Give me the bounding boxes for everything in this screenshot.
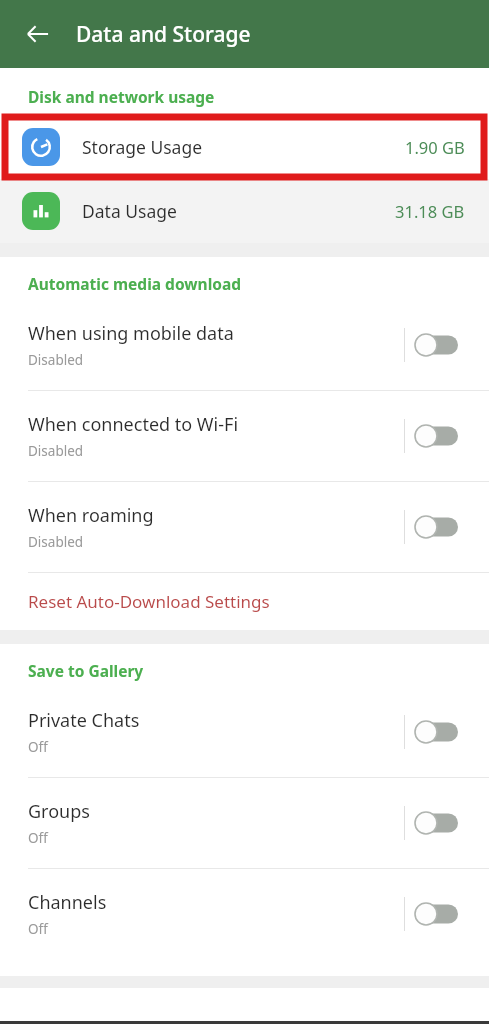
button[interactable]: When roaming [0, 482, 489, 572]
staticText: 1.90 GB [405, 136, 465, 158]
button[interactable]: Reset Auto-Download Settings [0, 573, 489, 630]
staticText: Data Usage [82, 199, 177, 223]
button[interactable]: When using mobile data [0, 300, 489, 390]
staticText: Off [28, 829, 48, 847]
staticText: When using mobile data [28, 321, 234, 346]
button[interactable]: When connected to Wi-Fi [0, 391, 489, 481]
staticText: When roaming [28, 503, 154, 528]
button[interactable]: Channels [0, 869, 489, 959]
staticText: Channels [28, 890, 107, 915]
button[interactable]: Storage Usage [0, 115, 489, 179]
button[interactable]: Private Chats [0, 687, 489, 777]
button[interactable]: Channels toggle [405, 886, 467, 942]
staticText: 31.18 GB [395, 200, 465, 222]
staticText: Off [28, 738, 48, 756]
button[interactable]: Back [14, 10, 62, 58]
staticText: Disk and network usage [28, 86, 215, 107]
button[interactable]: Private Chats toggle [405, 704, 467, 760]
staticText: Private Chats [28, 708, 140, 733]
staticText: Groups [28, 799, 90, 824]
button[interactable]: When connected to Wi-Fi toggle [405, 408, 467, 464]
staticText: Reset Auto-Download Settings [28, 590, 270, 613]
staticText: Disabled [28, 533, 84, 551]
staticText: Disabled [28, 442, 84, 460]
staticText: Save to Gallery [28, 660, 144, 681]
button[interactable]: When roaming toggle [405, 499, 467, 555]
staticText: Storage Usage [82, 135, 203, 159]
button[interactable]: Groups toggle [405, 795, 467, 851]
button[interactable]: When using mobile data toggle [405, 317, 467, 373]
staticText: Data and Storage [76, 20, 251, 49]
staticText: When connected to Wi-Fi [28, 412, 239, 437]
staticText: Disabled [28, 351, 84, 369]
button[interactable]: Groups [0, 778, 489, 868]
button[interactable]: Data Usage [0, 179, 489, 243]
staticText: Automatic media download [28, 273, 242, 294]
staticText: Off [28, 920, 48, 938]
